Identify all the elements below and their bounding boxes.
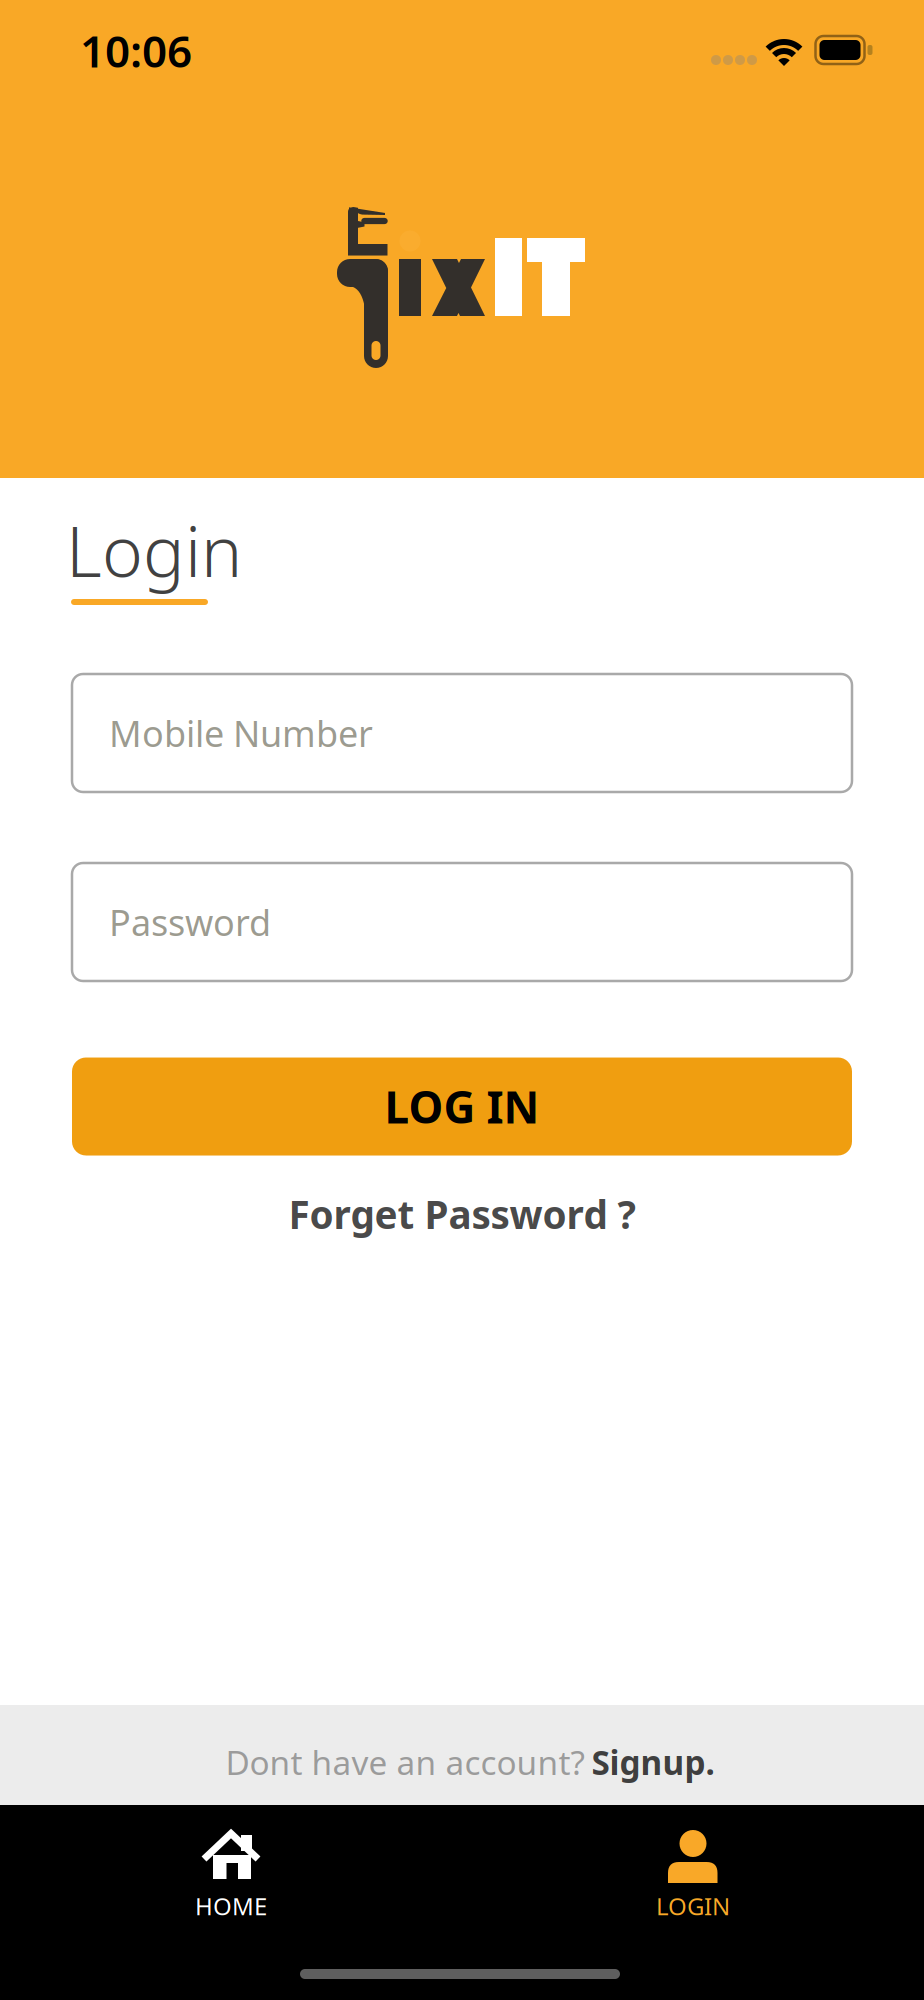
button[interactable]: Dont have an account? xyxy=(225,1740,714,1784)
button[interactable]: LOG IN xyxy=(72,1057,852,1155)
button[interactable]: LOGIN xyxy=(583,1821,803,1941)
secureTextField[interactable]: Password xyxy=(109,898,852,946)
staticText: Password xyxy=(109,898,271,946)
staticText: LOGIN xyxy=(656,1890,730,1922)
staticText: Forget Password ? xyxy=(288,1188,635,1240)
staticText: Dont have an account? xyxy=(225,1740,584,1784)
staticText: HOME xyxy=(195,1890,267,1922)
staticText: Signup. xyxy=(591,1740,714,1784)
staticText: LOG IN xyxy=(384,1077,539,1136)
staticText: Login xyxy=(66,504,242,596)
textField[interactable]: Mobile Number xyxy=(109,709,852,757)
staticText: 10:06 xyxy=(80,21,192,80)
button[interactable]: HOME xyxy=(121,1821,341,1941)
button[interactable]: Forget Password ? xyxy=(288,1188,635,1240)
staticText: Mobile Number xyxy=(109,709,373,757)
